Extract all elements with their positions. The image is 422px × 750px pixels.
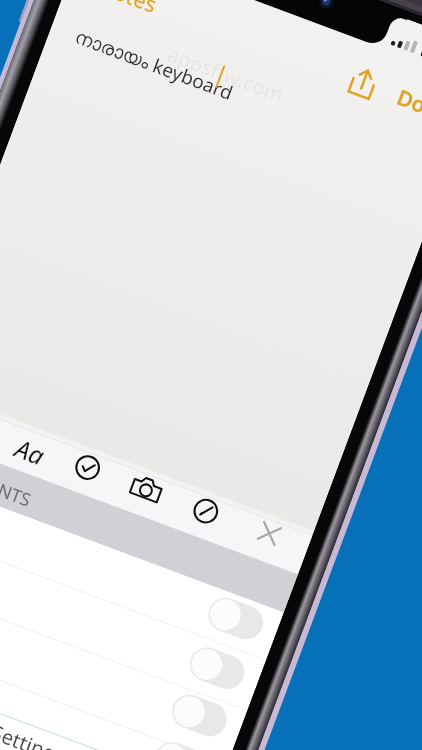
- button[interactable]: Notes app screenshot on a phone: [0, 0, 422, 750]
